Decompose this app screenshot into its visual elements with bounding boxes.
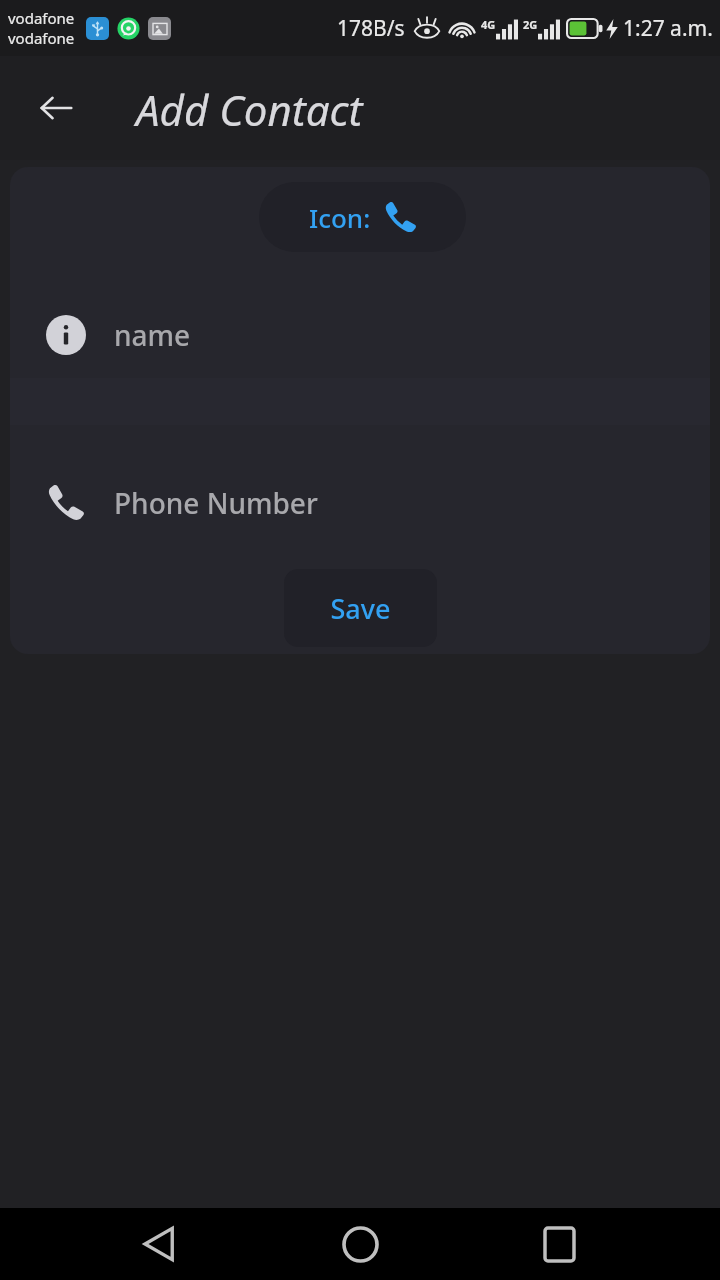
staticText: 4G xyxy=(481,17,496,32)
button[interactable]: Back xyxy=(0,1208,240,1280)
staticText: 2G xyxy=(523,17,538,32)
staticText: 1:27 a.m. xyxy=(623,14,713,43)
staticText: Icon: xyxy=(309,200,371,235)
button[interactable]: Recent apps xyxy=(480,1208,720,1280)
staticText: name xyxy=(114,316,191,354)
button[interactable]: Icon: xyxy=(259,182,466,252)
staticText: vodafone xyxy=(8,28,75,48)
button[interactable]: Home xyxy=(240,1208,480,1280)
button[interactable]: Save xyxy=(284,569,437,647)
staticText: Add Contact xyxy=(136,81,363,138)
button[interactable]: Phone Number xyxy=(10,466,710,540)
button[interactable]: name xyxy=(10,298,710,372)
staticText: Phone Number xyxy=(114,484,318,522)
staticText: Save xyxy=(330,590,391,627)
staticText: 178B/s xyxy=(337,14,405,43)
button[interactable]: Back xyxy=(26,78,86,138)
staticText: vodafone xyxy=(8,8,75,28)
